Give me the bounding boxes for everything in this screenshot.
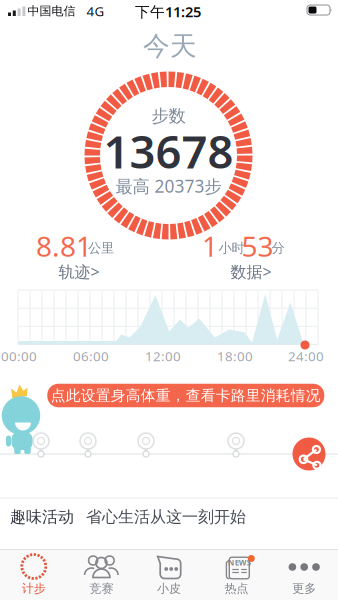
staticText: 趣味活动 [10,507,74,527]
staticText: 1 [202,227,218,265]
staticText: 点此设置身高体重，查看卡路里消耗情况 [51,386,321,404]
staticText: 下午11:25 [135,2,201,21]
staticText: 分 [271,240,284,256]
staticText: NEWS [228,557,251,568]
button[interactable]: 分享 [291,436,327,472]
staticText: 4G [86,2,104,20]
staticText: 24:00 [288,347,324,365]
button[interactable]: 趣味活动 [0,499,338,535]
button[interactable]: 竞赛 [68,550,135,600]
button[interactable]: 点此设置身高体重，查看卡路里消耗情况 [47,384,324,407]
staticText: 计步 [22,581,46,596]
staticText: 中国电信 [27,4,75,18]
staticText: 12:00 [145,347,181,365]
staticText: 轨迹> [58,261,99,282]
staticText: 18:00 [217,347,253,365]
button[interactable]: 小皮 [135,550,203,600]
staticText: 今天 [143,30,197,62]
staticText: 00:00 [1,347,37,365]
staticText: 步数 [151,105,185,127]
button[interactable]: 数据> [221,261,281,281]
staticText: 数据> [230,261,271,282]
staticText: 13678 [103,121,233,181]
staticText: 小时 [218,240,244,256]
staticText: 公里 [88,240,114,256]
staticText: 53 [241,227,273,265]
button[interactable]: 轨迹> [49,261,109,281]
staticText: 竞赛 [89,581,113,596]
button[interactable]: NEWS [203,550,270,600]
staticText: 最高 20373步 [115,174,221,197]
staticText: 热点 [225,581,249,596]
staticText: 省心生活从这一刻开始 [86,507,246,527]
button[interactable]: 更多 [270,550,338,600]
staticText: 06:00 [73,347,109,365]
button[interactable]: 计步 [0,550,68,600]
staticText: 小皮 [157,581,181,596]
staticText: 更多 [292,581,316,596]
staticText: 8.81 [36,227,92,265]
